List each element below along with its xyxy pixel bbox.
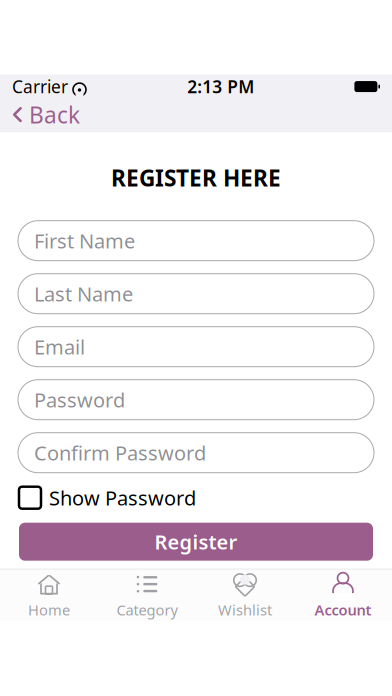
button[interactable]: Wishlist — [196, 570, 294, 620]
staticText: Email — [34, 333, 85, 360]
staticText: Password — [34, 386, 125, 413]
staticText: Wishlist — [218, 600, 272, 620]
staticText: Show Password — [49, 484, 196, 511]
staticText: 2:13 PM — [187, 75, 254, 98]
staticText: Back — [29, 99, 80, 130]
staticText: Account — [314, 600, 371, 620]
staticText: Last Name — [34, 280, 133, 307]
staticText: REGISTER HERE — [111, 163, 281, 193]
staticText: First Name — [34, 227, 135, 254]
staticText: Category — [116, 600, 177, 620]
staticText: Register — [154, 528, 237, 555]
button[interactable]: Back — [0, 97, 90, 133]
button[interactable]: Home — [0, 570, 98, 620]
button[interactable]: Register — [19, 523, 373, 561]
staticText: Carrier — [12, 75, 68, 98]
staticText: Confirm Password — [34, 439, 206, 466]
staticText: Home — [28, 600, 70, 620]
button[interactable]: Account — [294, 570, 392, 620]
button[interactable]: Category — [98, 570, 196, 620]
button[interactable]: Show Password — [19, 485, 373, 511]
